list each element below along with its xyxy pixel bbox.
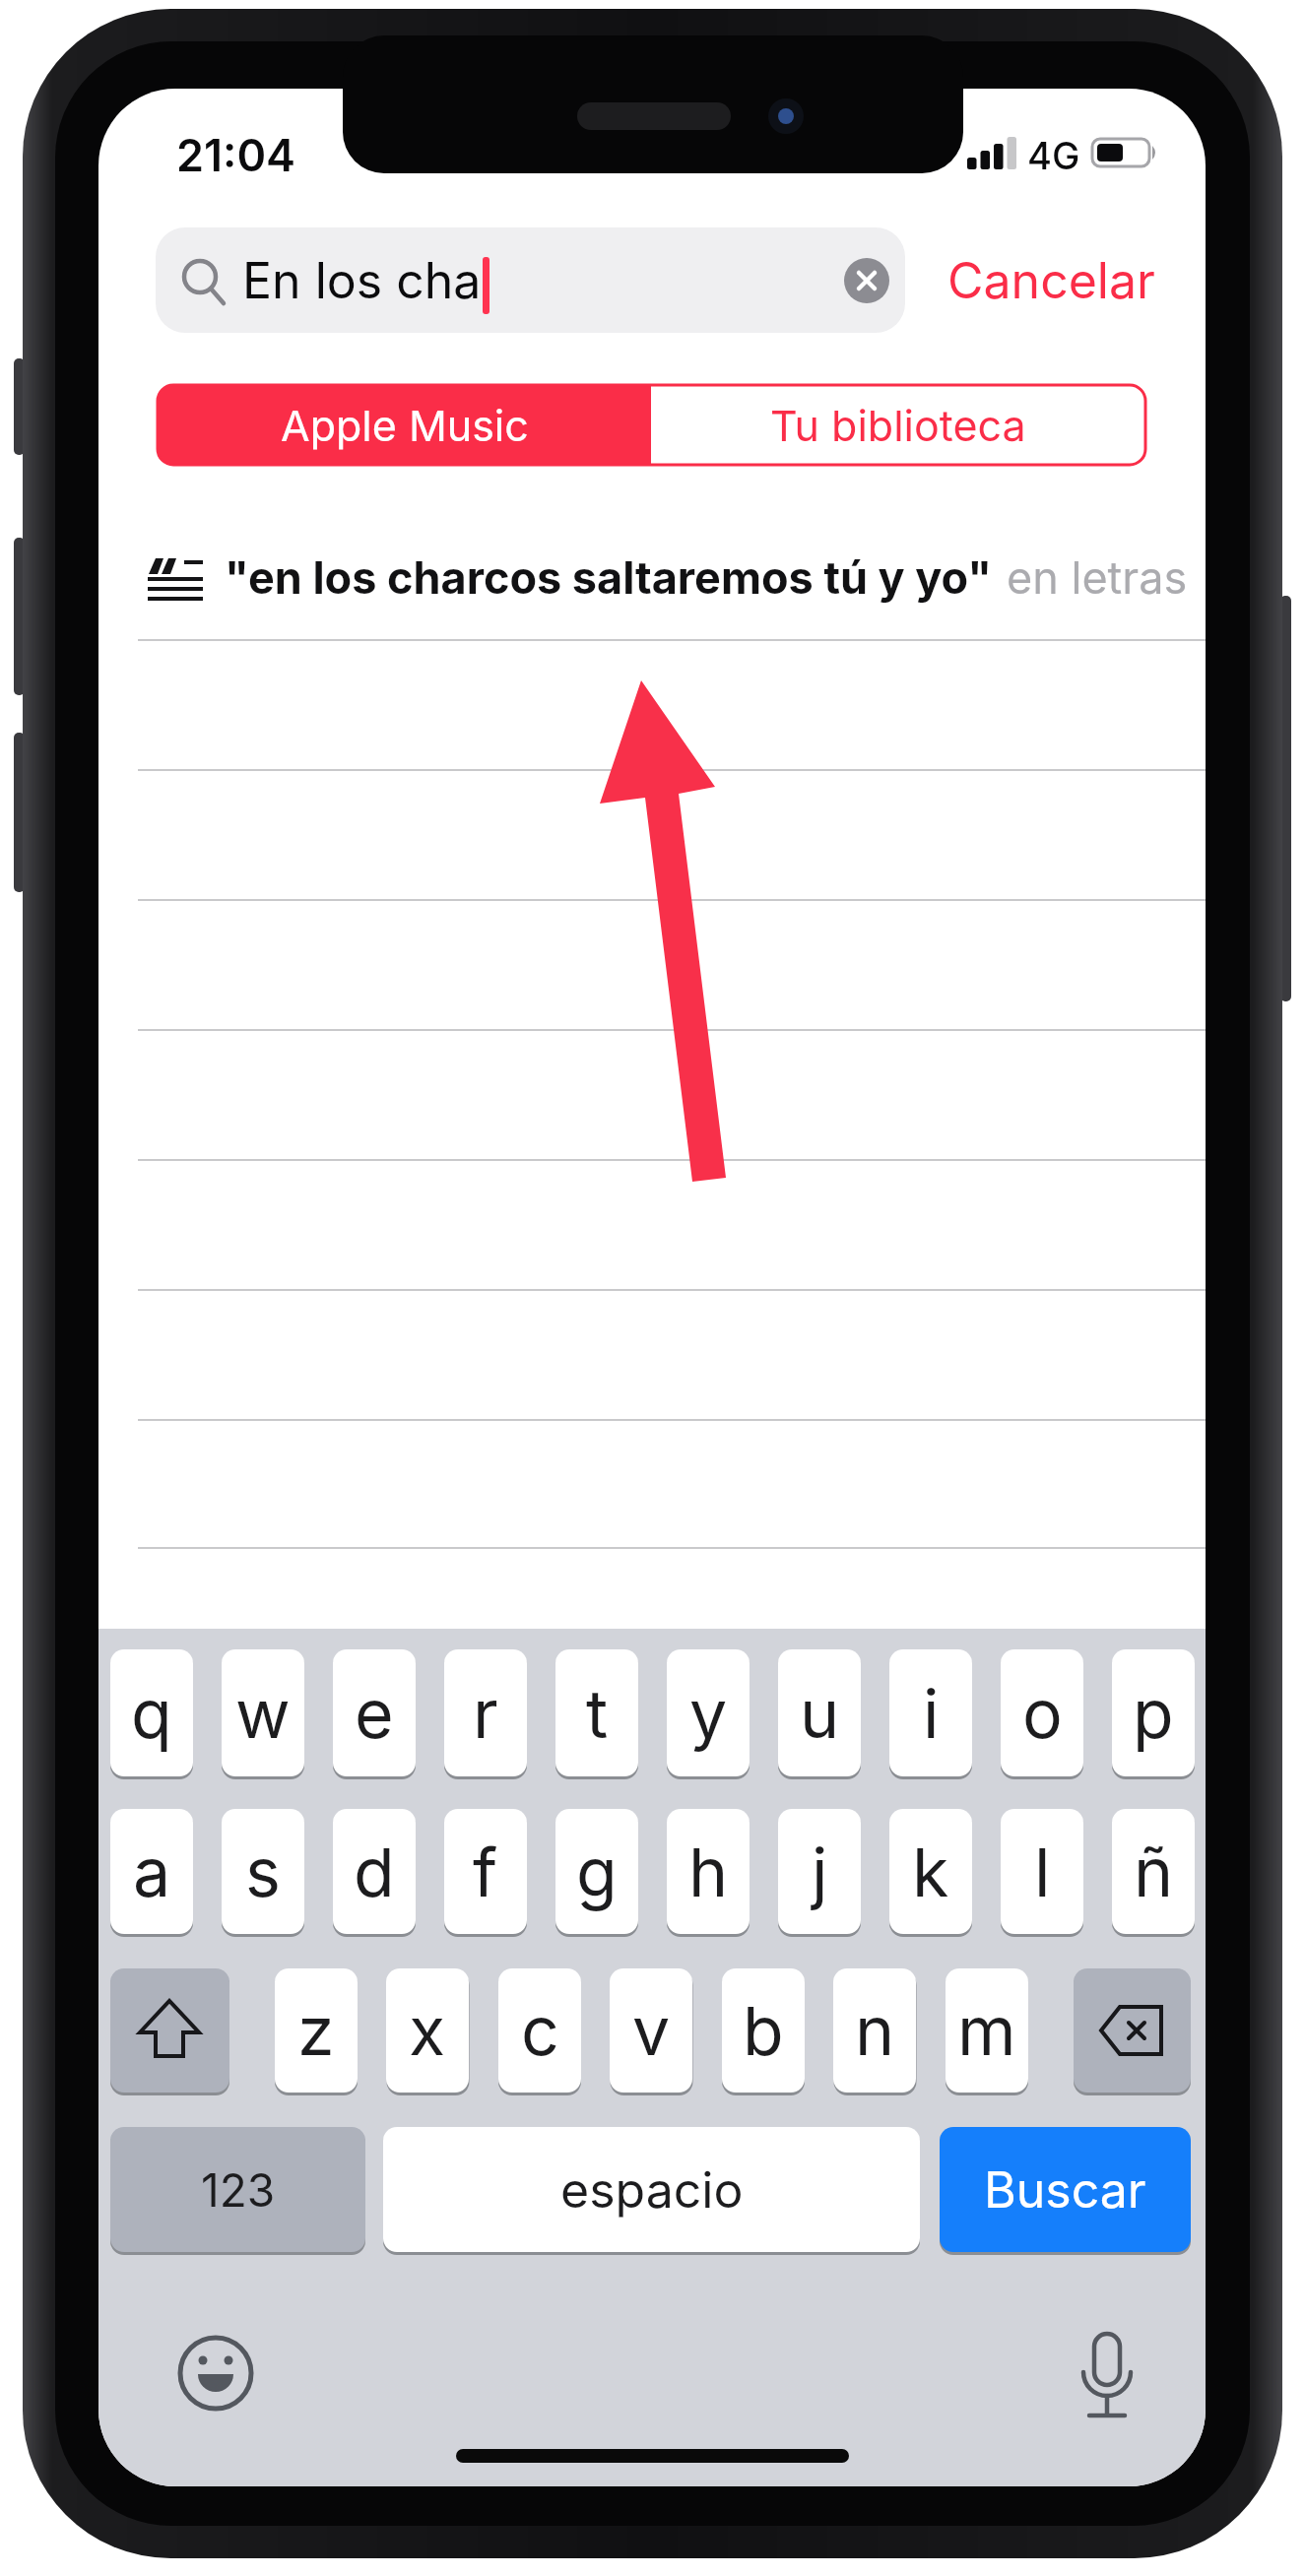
button[interactable]: p [1112, 1649, 1195, 1776]
button[interactable]: v [610, 1968, 692, 2093]
button[interactable]: r [444, 1649, 527, 1776]
button[interactable]: "en los charcos saltaremos tú y yo" [138, 547, 1206, 608]
button[interactable]: espacio [383, 2127, 920, 2252]
button[interactable]: y [667, 1649, 750, 1776]
button[interactable]: c [498, 1968, 581, 2093]
staticText: c [521, 1990, 559, 2071]
button[interactable]: Apple Music [158, 385, 651, 465]
button[interactable]: f [444, 1809, 527, 1934]
staticText: g [576, 1832, 618, 1912]
staticText: 123 [201, 2162, 276, 2218]
staticText: ñ [1134, 1832, 1174, 1912]
staticText: d [354, 1832, 395, 1912]
staticText: u [800, 1673, 840, 1754]
staticText: "en los charcos saltaremos tú y yo" [225, 550, 993, 604]
button[interactable]: w [222, 1649, 304, 1776]
staticText: y [689, 1673, 728, 1754]
button[interactable]: q [110, 1649, 193, 1776]
staticText: En los cha [242, 251, 482, 310]
button[interactable] [1060, 2326, 1154, 2420]
staticText: r [473, 1673, 498, 1754]
button[interactable]: h [667, 1809, 750, 1934]
staticText: k [912, 1832, 949, 1912]
staticText: h [688, 1832, 729, 1912]
staticText: Apple Music [281, 400, 529, 451]
staticText: m [957, 1990, 1016, 2071]
staticText: a [133, 1832, 171, 1912]
staticText: q [131, 1673, 172, 1754]
staticText: espacio [560, 2160, 744, 2220]
button[interactable] [110, 1968, 229, 2093]
staticText: b [743, 1990, 784, 2071]
button[interactable] [168, 2326, 263, 2420]
staticText: z [297, 1990, 335, 2071]
staticText: i [923, 1673, 940, 1754]
staticText: l [1034, 1832, 1051, 1912]
button[interactable]: g [555, 1809, 638, 1934]
button[interactable]: Cancelar [936, 227, 1152, 333]
button[interactable]: d [333, 1809, 416, 1934]
staticText: t [586, 1673, 609, 1754]
staticText: o [1022, 1673, 1063, 1754]
staticText: x [409, 1990, 446, 2071]
button[interactable]: Tu biblioteca [651, 385, 1145, 465]
staticText: v [632, 1990, 671, 2071]
staticText: w [235, 1673, 291, 1754]
button[interactable]: m [946, 1968, 1028, 2093]
button[interactable]: Buscar [940, 2127, 1191, 2252]
button[interactable]: 123 [110, 2127, 365, 2252]
staticText: 4G [1027, 133, 1080, 174]
button[interactable]: z [275, 1968, 358, 2093]
button[interactable]: o [1001, 1649, 1083, 1776]
button[interactable]: u [778, 1649, 861, 1776]
staticText: p [1133, 1673, 1174, 1754]
staticText: Cancelar [947, 251, 1155, 310]
button[interactable] [1074, 1968, 1191, 2093]
button[interactable]: a [110, 1809, 193, 1934]
button[interactable]: j [778, 1809, 861, 1934]
button[interactable]: i [889, 1649, 972, 1776]
button[interactable]: s [222, 1809, 304, 1934]
button[interactable]: k [889, 1809, 972, 1934]
button[interactable]: e [333, 1649, 416, 1776]
button[interactable] [156, 227, 905, 333]
staticText: f [473, 1832, 498, 1912]
staticText: j [812, 1832, 828, 1912]
staticText: en letras [1007, 550, 1188, 604]
button[interactable]: n [833, 1968, 916, 2093]
staticText: 21:04 [176, 128, 296, 181]
staticText: Buscar [984, 2160, 1146, 2220]
staticText: s [245, 1832, 281, 1912]
button[interactable]: l [1001, 1809, 1083, 1934]
staticText: n [855, 1990, 895, 2071]
staticText: Tu biblioteca [770, 400, 1026, 451]
button[interactable]: x [386, 1968, 469, 2093]
button[interactable]: ñ [1112, 1809, 1195, 1934]
staticText: e [355, 1673, 394, 1754]
button[interactable]: t [555, 1649, 638, 1776]
button[interactable]: b [722, 1968, 805, 2093]
